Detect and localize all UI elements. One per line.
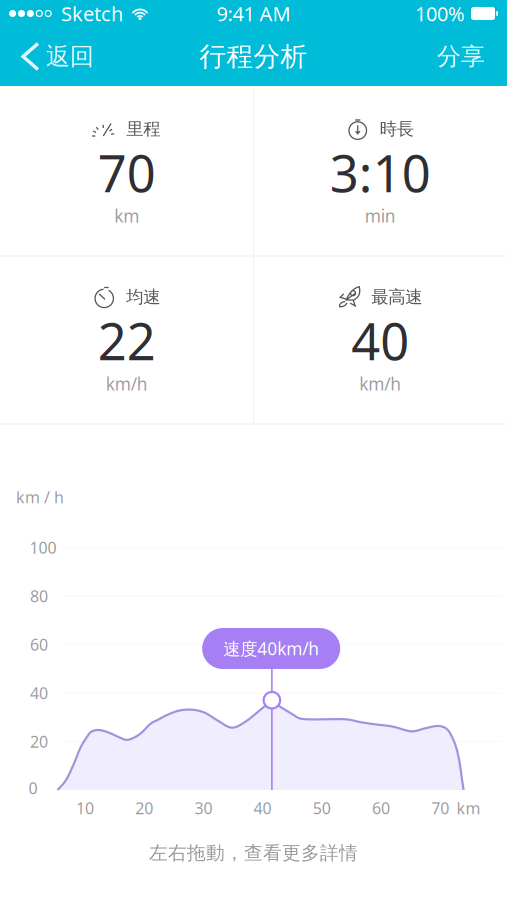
staticText: 速度40km/h (223, 637, 319, 660)
staticText: 22 (98, 307, 156, 374)
staticText: 70 (98, 139, 156, 206)
staticText: 時長 (380, 118, 414, 140)
staticText: 40 (30, 682, 48, 704)
staticText: 40 (254, 797, 272, 819)
staticText: 均速 (126, 286, 160, 308)
button[interactable]: 返回 (0, 27, 108, 86)
staticText: 20 (30, 731, 48, 752)
staticText: 返回 (46, 42, 94, 71)
staticText: 最高速 (371, 286, 422, 308)
button[interactable]: 分享 (415, 27, 507, 86)
staticText: 3:10 (330, 139, 431, 206)
staticText: 70 (431, 797, 449, 819)
staticText: km/h (359, 372, 401, 395)
staticText: 9:41 AM (216, 0, 290, 27)
staticText: 30 (194, 797, 212, 819)
staticText: 20 (135, 797, 153, 819)
staticText: 行程分析 (199, 40, 307, 73)
staticText: 80 (30, 585, 48, 607)
staticText: 0 (28, 777, 37, 799)
staticText: km (457, 797, 481, 819)
staticText: 100% (415, 0, 465, 27)
staticText: 50 (313, 797, 331, 819)
staticText: 100 (29, 537, 56, 558)
staticText: 左右拖動，查看更多詳情 (149, 841, 358, 864)
staticText: 60 (30, 634, 48, 655)
staticText: km / h (16, 486, 64, 508)
staticText: km (114, 204, 139, 227)
staticText: Sketch (61, 0, 123, 27)
staticText: min (365, 204, 396, 227)
staticText: 10 (76, 797, 94, 819)
staticText: 60 (372, 797, 390, 819)
staticText: 里程 (126, 118, 160, 140)
staticText: 分享 (437, 42, 485, 71)
staticText: km/h (106, 372, 148, 395)
staticText: 40 (351, 307, 409, 374)
